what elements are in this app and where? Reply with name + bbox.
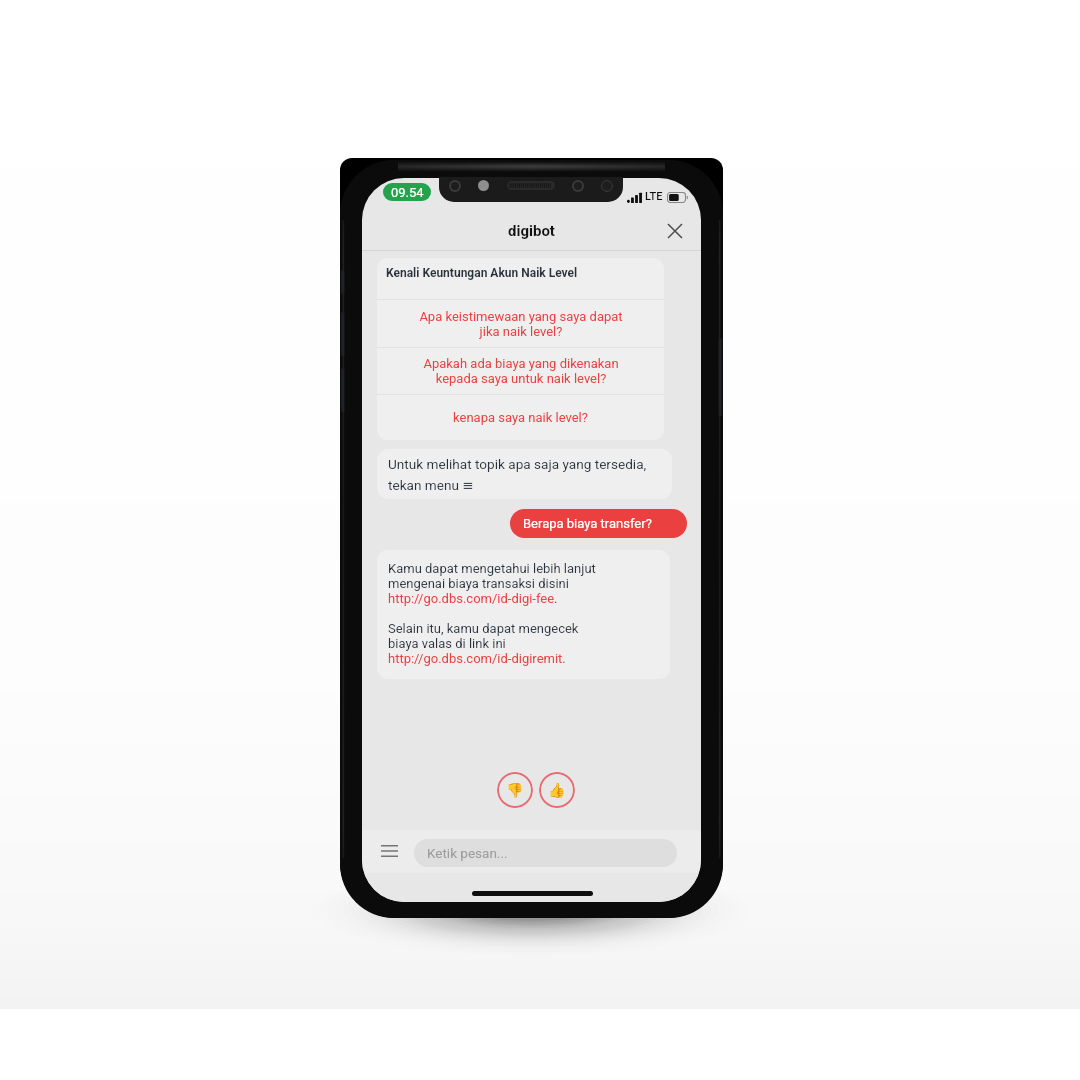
- button[interactable]: Ketik pesan...: [414, 839, 677, 867]
- button[interactable]: Kenali Keuntungan Akun Naik Level: [377, 258, 664, 299]
- staticText: Ketik pesan...: [427, 845, 508, 861]
- button[interactable]: Close chat: [660, 216, 690, 246]
- staticText: Apa keistimewaan yang saya dapat jika na…: [419, 309, 623, 339]
- button[interactable]: Open menu: [375, 837, 403, 865]
- staticText: 09.54: [391, 185, 424, 200]
- button[interactable]: Apakah ada biaya yang dikenakan kepada s…: [377, 348, 664, 394]
- staticText: 👍: [548, 782, 566, 798]
- button[interactable]: kenapa saya naik level?: [377, 395, 664, 440]
- staticText: 👎: [506, 782, 524, 798]
- staticText: Kamu dapat mengetahui lebih lanjut menge…: [388, 561, 596, 666]
- staticText: Kenali Keuntungan Akun Naik Level: [386, 266, 578, 280]
- button[interactable]: Helpful: [539, 772, 575, 808]
- staticText: Untuk melihat topik apa saja yang tersed…: [388, 456, 647, 493]
- staticText: Berapa biaya transfer?: [523, 516, 652, 531]
- button[interactable]: Not helpful: [497, 772, 533, 808]
- button[interactable]: Berapa biaya transfer?: [510, 509, 687, 538]
- staticText: Apakah ada biaya yang dikenakan kepada s…: [423, 356, 619, 386]
- staticText: digibot: [508, 222, 555, 240]
- staticText: LTE: [645, 190, 663, 203]
- staticText: kenapa saya naik level?: [453, 410, 588, 425]
- button[interactable]: Apa keistimewaan yang saya dapat jika na…: [377, 300, 664, 347]
